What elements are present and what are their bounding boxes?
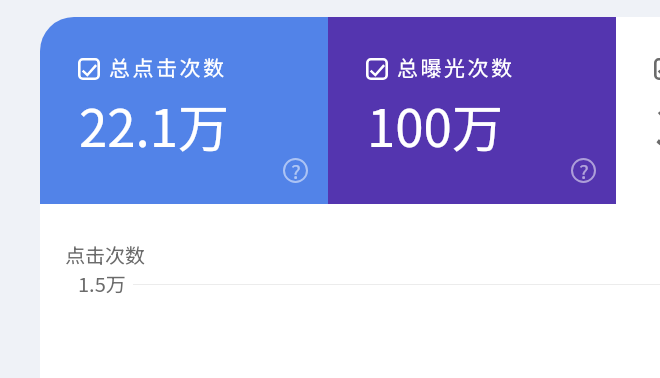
button[interactable]: Help about 总曝光次数	[571, 158, 596, 183]
staticText: 总曝光次数	[397, 52, 515, 82]
button[interactable]: 总花费	[616, 17, 660, 204]
staticText: ?	[291, 156, 301, 181]
button[interactable]: 总点击次数	[40, 17, 328, 204]
staticText: 3.2万	[655, 88, 660, 162]
button[interactable]: Help about 总点击次数	[283, 158, 308, 183]
staticText: 22.1万	[79, 88, 230, 162]
staticText: 100万	[367, 88, 503, 162]
button[interactable]: 总曝光次数	[328, 17, 616, 204]
staticText: ?	[579, 156, 589, 181]
staticText: 总点击次数	[109, 52, 227, 82]
staticText: 1.5万	[78, 269, 126, 298]
staticText: 点击次数	[65, 240, 145, 269]
